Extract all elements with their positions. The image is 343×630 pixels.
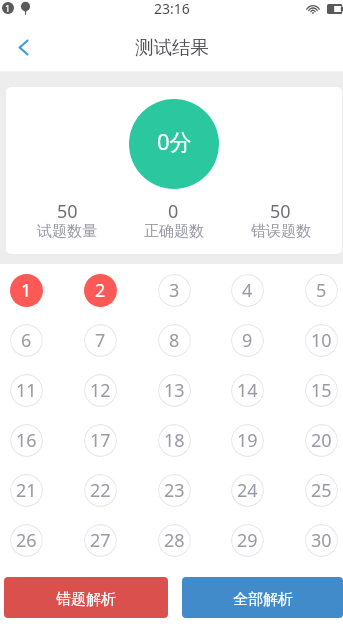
staticText: 9 [242,328,253,353]
staticText: 3 [169,278,180,303]
staticText: 2 [95,278,106,303]
button[interactable]: 30 [305,524,338,557]
button[interactable]: 17 [84,424,117,457]
staticText: 12 [90,378,111,403]
button[interactable]: 10 [305,324,338,357]
staticText: 50 [57,199,78,224]
staticText: 26 [16,528,37,553]
button[interactable]: 1 [10,274,43,307]
staticText: 14 [237,378,258,403]
button[interactable]: 3 [158,274,191,307]
staticText: 23 [164,478,185,503]
staticText: 21 [16,478,37,503]
button[interactable]: 13 [158,374,191,407]
button[interactable]: 26 [10,524,43,557]
staticText: 16 [16,428,37,453]
button[interactable]: 12 [84,374,117,407]
button[interactable]: Back [3,27,43,67]
staticText: 错题解析 [56,590,116,609]
staticText: 错误题数 [251,222,311,241]
button[interactable]: 18 [158,424,191,457]
button[interactable]: 23 [158,474,191,507]
staticText: 30 [311,528,332,553]
button[interactable]: 16 [10,424,43,457]
staticText: 13 [164,378,185,403]
staticText: 6 [21,328,32,353]
button[interactable]: 错题解析 [4,577,168,618]
button[interactable]: 21 [10,474,43,507]
staticText: 28 [164,528,185,553]
staticText: 7 [95,328,106,353]
button[interactable]: 27 [84,524,117,557]
staticText: 8 [169,328,180,353]
staticText: 19 [237,428,258,453]
staticText: 27 [90,528,111,553]
staticText: 15 [311,378,332,403]
button[interactable]: 全部解析 [182,577,343,618]
staticText: 5 [316,278,327,303]
staticText: 11 [16,378,37,403]
staticText: 22 [90,478,111,503]
staticText: 1 [21,278,32,303]
button[interactable]: 4 [231,274,264,307]
button[interactable]: 5 [305,274,338,307]
staticText: 10 [311,328,332,353]
staticText: 24 [237,478,258,503]
staticText: 17 [90,428,111,453]
button[interactable]: 29 [231,524,264,557]
button[interactable]: 25 [305,474,338,507]
staticText: 18 [164,428,185,453]
staticText: 20 [311,428,332,453]
staticText: 1 [5,2,11,14]
button[interactable]: 28 [158,524,191,557]
staticText: 测试结果 [135,36,209,59]
button[interactable]: 24 [231,474,264,507]
button[interactable]: 8 [158,324,191,357]
button[interactable]: 15 [305,374,338,407]
button[interactable]: 9 [231,324,264,357]
button[interactable]: 7 [84,324,117,357]
staticText: 23:16 [154,0,190,17]
staticText: 50 [270,199,291,224]
button[interactable]: 2 [84,274,117,307]
button[interactable]: 20 [305,424,338,457]
staticText: 0分 [157,126,192,156]
staticText: 25 [311,478,332,503]
button[interactable]: 6 [10,324,43,357]
staticText: 全部解析 [233,590,293,609]
staticText: 试题数量 [37,222,97,241]
button[interactable]: 14 [231,374,264,407]
button[interactable]: 22 [84,474,117,507]
button[interactable]: 11 [10,374,43,407]
staticText: 29 [237,528,258,553]
staticText: 4 [242,278,253,303]
staticText: 0 [168,199,179,224]
button[interactable]: 19 [231,424,264,457]
staticText: 正确题数 [144,222,204,241]
